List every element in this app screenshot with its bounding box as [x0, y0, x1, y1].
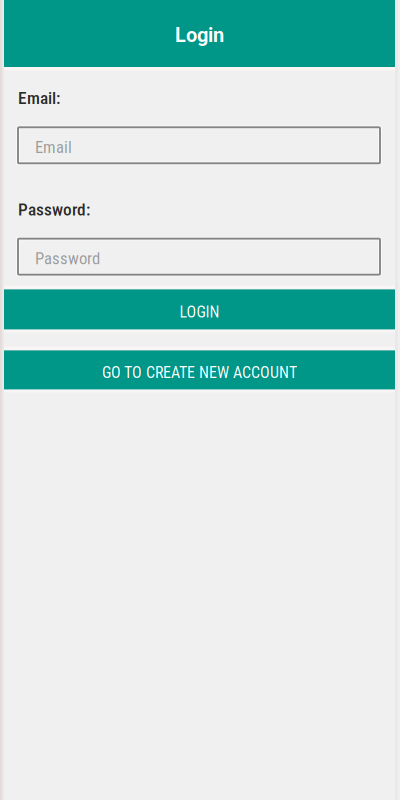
staticText: Password [35, 249, 100, 268]
button[interactable]: GO TO CREATE NEW ACCOUNT [4, 351, 395, 390]
button[interactable]: Password [18, 239, 380, 275]
staticText: Password: [18, 199, 90, 220]
staticText: Email: [18, 88, 60, 108]
staticText: Email [35, 137, 72, 157]
staticText: GO TO CREATE NEW ACCOUNT [102, 363, 297, 382]
staticText: Login [175, 24, 224, 47]
button[interactable]: LOGIN [4, 290, 395, 330]
staticText: LOGIN [179, 303, 219, 321]
button[interactable]: Email [18, 127, 380, 163]
